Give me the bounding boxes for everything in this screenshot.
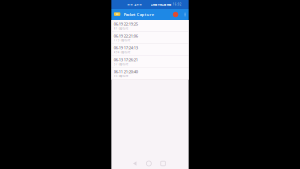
staticText: Packet Capture xyxy=(124,12,154,17)
button[interactable]: 06-19 22:19:25 xyxy=(111,20,189,32)
staticText: 06-13 17:26:21 xyxy=(114,57,138,62)
button[interactable]: Back xyxy=(128,158,142,169)
button[interactable]: 06-11 21:20:40 xyxy=(111,68,189,79)
staticText: 173 capture xyxy=(114,38,131,42)
staticText: 06-19 17:24:13 xyxy=(114,45,138,50)
button[interactable]: Home xyxy=(142,158,156,169)
button[interactable]: Recents xyxy=(156,158,170,169)
staticText: 06-19 22:19:25 xyxy=(114,21,138,27)
button[interactable]: More options xyxy=(184,10,189,19)
button[interactable]: 06-13 17:26:21 xyxy=(111,56,189,68)
staticText: 93 capture xyxy=(114,74,129,78)
button[interactable]: 06-19 17:24:13 xyxy=(111,44,189,56)
button[interactable]: 06-19 22:21:06 xyxy=(111,32,189,44)
staticText: 494 capture xyxy=(114,50,131,54)
staticText: 06-11 21:20:40 xyxy=(114,69,138,74)
staticText: 41 capture xyxy=(114,27,129,30)
staticText: ▬▬ ▲▬▬ xyxy=(127,3,142,6)
button[interactable]: Record xyxy=(171,10,184,19)
staticText: 37 capture xyxy=(114,62,129,66)
staticText: 06-19 22:21:06 xyxy=(114,33,138,38)
staticText: ▲●■◆●▲■●■ 16:02 xyxy=(151,3,182,6)
